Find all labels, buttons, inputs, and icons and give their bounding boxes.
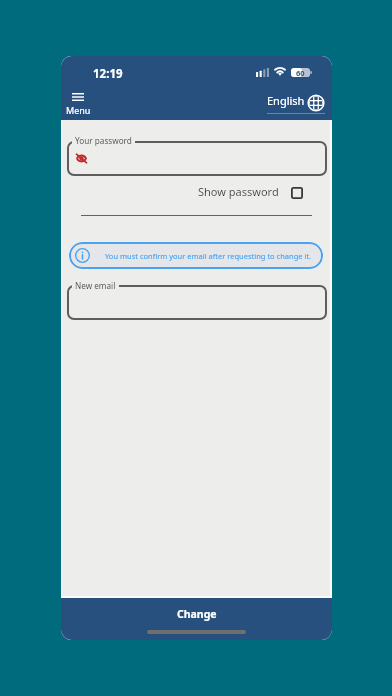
staticText: New email: [75, 280, 116, 291]
button[interactable]: [67, 141, 327, 176]
staticText: Menu: [66, 104, 91, 116]
staticText: Your password: [75, 135, 132, 146]
staticText: 12:19: [93, 66, 123, 82]
button[interactable]: You must confirm your email after reques…: [69, 242, 323, 269]
button[interactable]: Menu: [61, 91, 96, 119]
staticText: You must confirm your email after reques…: [105, 251, 312, 261]
staticText: English: [267, 93, 305, 108]
button[interactable]: English: [267, 93, 323, 108]
button[interactable]: [67, 285, 327, 320]
staticText: 60: [296, 68, 305, 77]
staticText: Change: [177, 607, 217, 621]
button[interactable]: Change: [61, 597, 332, 640]
staticText: Show password: [198, 184, 279, 199]
button[interactable]: Show password: [194, 180, 307, 203]
